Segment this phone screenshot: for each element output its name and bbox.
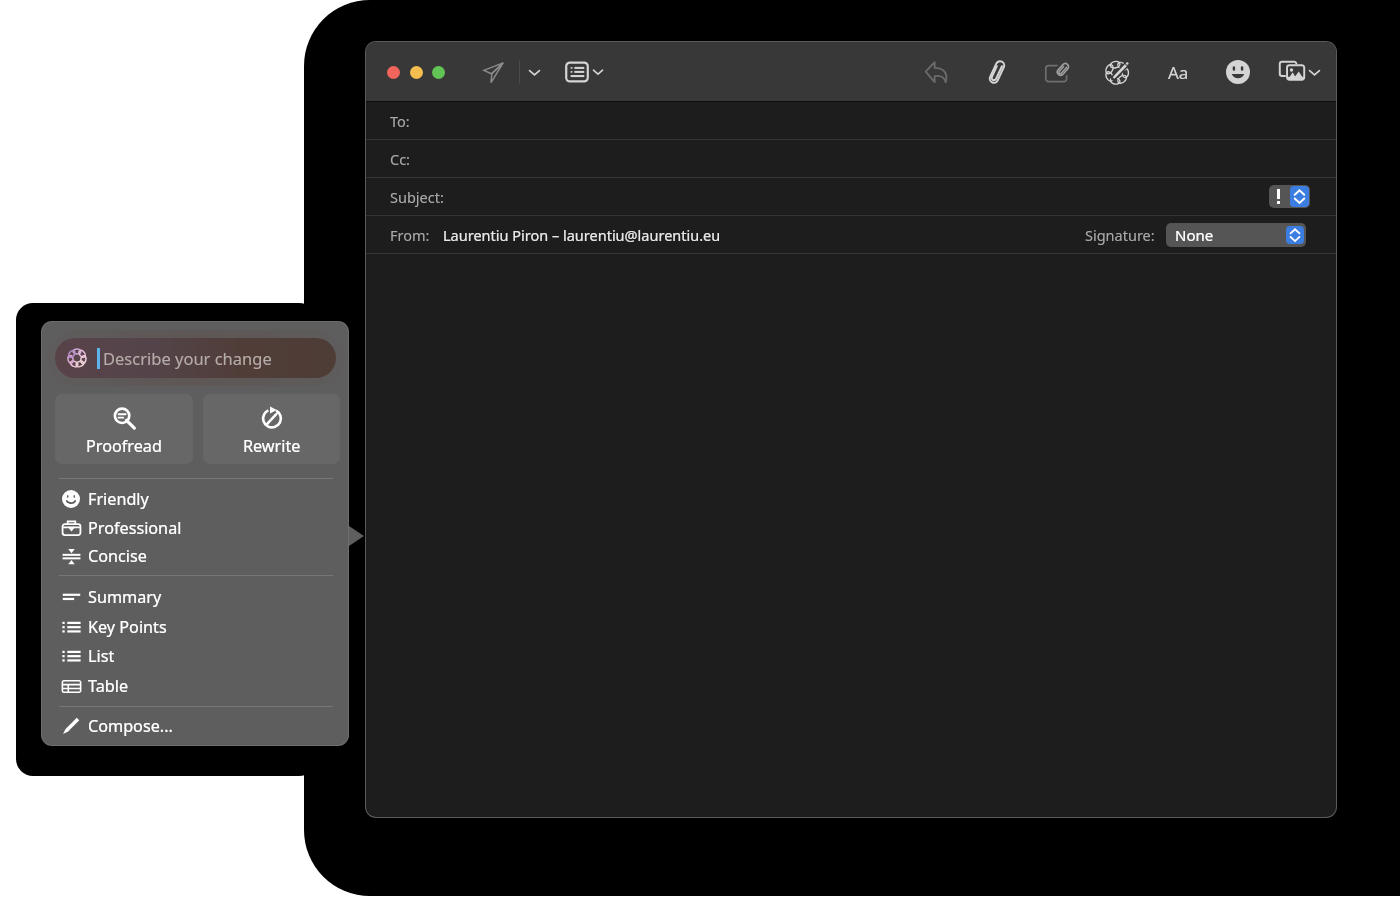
staticText: Concise <box>88 545 147 567</box>
button[interactable]: Concise <box>50 542 342 570</box>
button[interactable]: Minimise <box>410 66 423 79</box>
staticText: Subject: <box>390 187 444 207</box>
button[interactable]: Rewrite <box>203 394 340 464</box>
button[interactable]: Photos options <box>1304 62 1324 82</box>
staticText: From: <box>390 225 430 245</box>
button[interactable]: Format <box>1163 57 1193 87</box>
button[interactable]: Writing tools <box>1104 58 1132 86</box>
button[interactable]: Summary <box>50 583 342 611</box>
staticText: List <box>88 645 115 667</box>
staticText: Cc: <box>390 149 411 169</box>
staticText: Describe your change <box>103 347 272 369</box>
button[interactable]: List <box>50 642 342 670</box>
button[interactable]: Emoji <box>1225 59 1251 85</box>
button[interactable]: Header fields options <box>590 64 606 80</box>
button[interactable]: Attach <box>983 58 1011 86</box>
staticText: Signature: <box>1085 225 1155 245</box>
staticText: Friendly <box>88 488 149 510</box>
button[interactable]: Compose... <box>50 712 342 740</box>
staticText: Laurentiu Piron – laurentiu@laurentiu.eu <box>443 225 721 245</box>
button[interactable]: Key Points <box>50 613 342 641</box>
button[interactable]: Send options <box>526 64 542 80</box>
button[interactable]: Professional <box>50 514 342 542</box>
button[interactable]: Close <box>387 66 400 79</box>
button[interactable]: Friendly <box>50 485 342 513</box>
button[interactable]: Header fields <box>565 60 589 84</box>
button[interactable]: Priority <box>1269 185 1310 208</box>
button[interactable]: Zoom <box>432 66 445 79</box>
staticText: Professional <box>88 517 182 539</box>
button[interactable]: Signature <box>1166 223 1306 247</box>
staticText: None <box>1175 225 1214 245</box>
button[interactable]: Table <box>50 672 342 700</box>
staticText: Table <box>88 675 129 697</box>
staticText: Key Points <box>88 616 167 638</box>
staticText: Rewrite <box>243 435 301 457</box>
button[interactable]: Send <box>480 59 506 85</box>
staticText: To: <box>390 111 410 131</box>
button[interactable]: Markup <box>1044 58 1072 86</box>
button[interactable]: Photos <box>1278 58 1306 86</box>
button[interactable]: Proofread <box>55 394 193 464</box>
staticText: Aa <box>1168 61 1189 84</box>
staticText: Proofread <box>86 435 162 457</box>
button[interactable]: Describe your change <box>55 338 336 378</box>
staticText: Compose... <box>88 715 173 737</box>
button[interactable]: Reply <box>922 58 950 86</box>
staticText: Summary <box>88 586 162 608</box>
